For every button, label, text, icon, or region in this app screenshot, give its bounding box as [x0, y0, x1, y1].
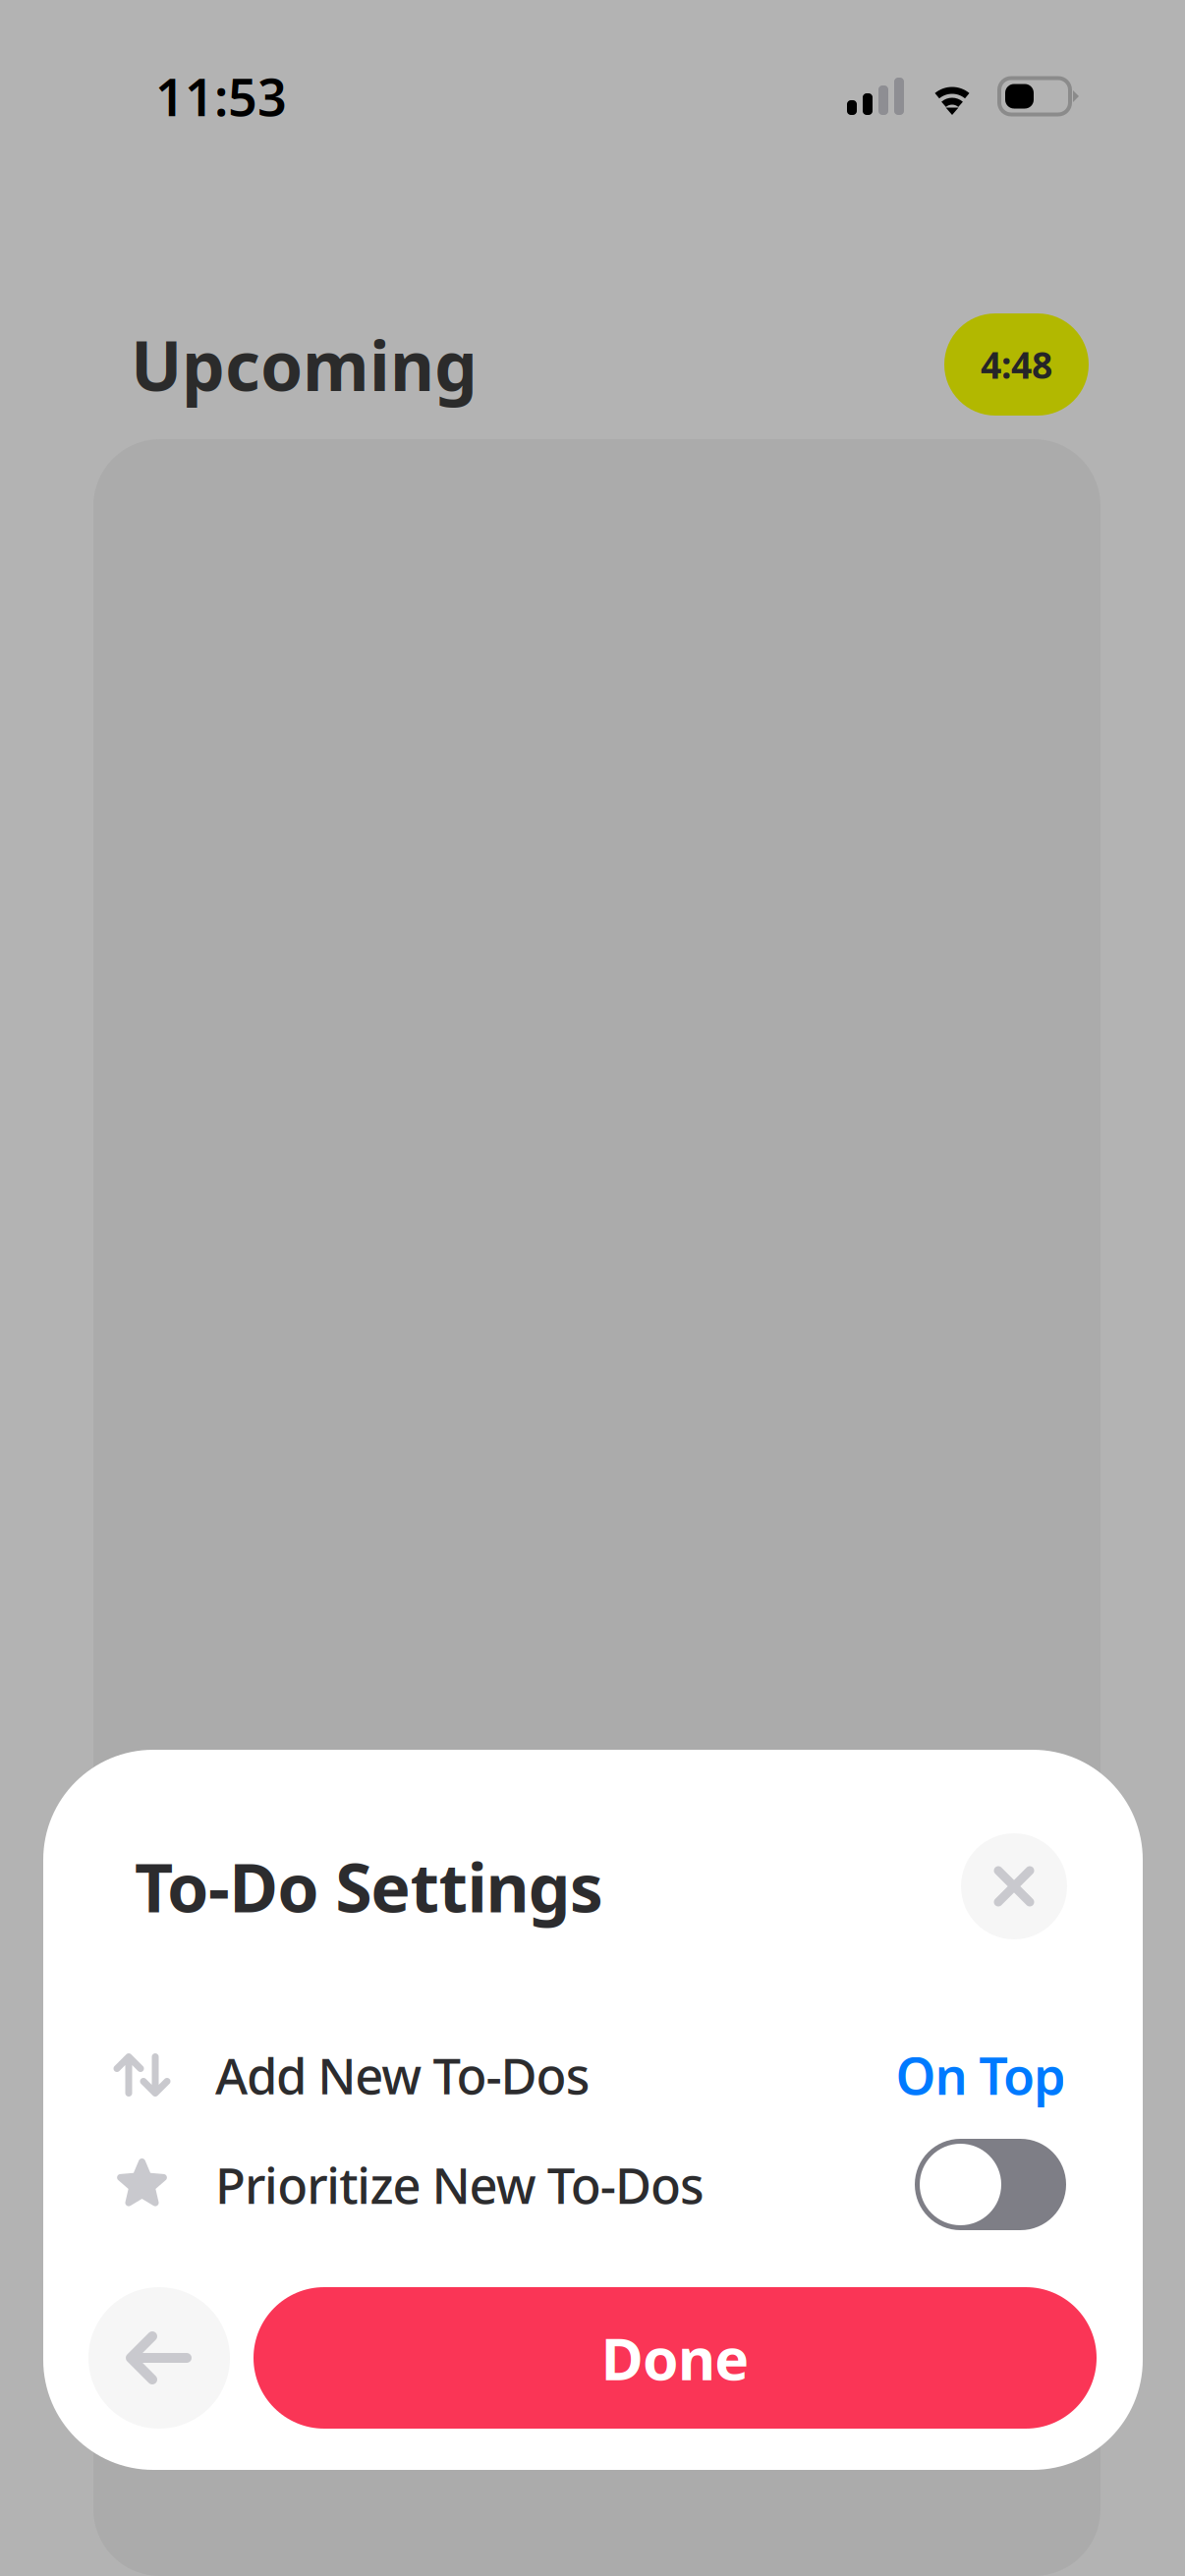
button[interactable]: Done: [254, 2287, 1097, 2429]
staticText: 11:53: [155, 62, 287, 130]
button[interactable]: Back: [88, 2287, 230, 2429]
button[interactable]: Add New To-Dos: [43, 2045, 1143, 2104]
button[interactable]: Close: [961, 1833, 1067, 1939]
staticText: 4:48: [981, 340, 1052, 389]
staticText: Upcoming: [131, 319, 478, 410]
staticText: On Top: [896, 2041, 1066, 2109]
staticText: Done: [601, 2320, 749, 2396]
staticText: Add New To-Dos: [215, 2042, 590, 2108]
button[interactable]: Prioritize New To-Dos: [43, 2139, 1143, 2230]
staticText: Prioritize New To-Dos: [215, 2151, 705, 2218]
staticText: To-Do Settings: [135, 1842, 603, 1931]
